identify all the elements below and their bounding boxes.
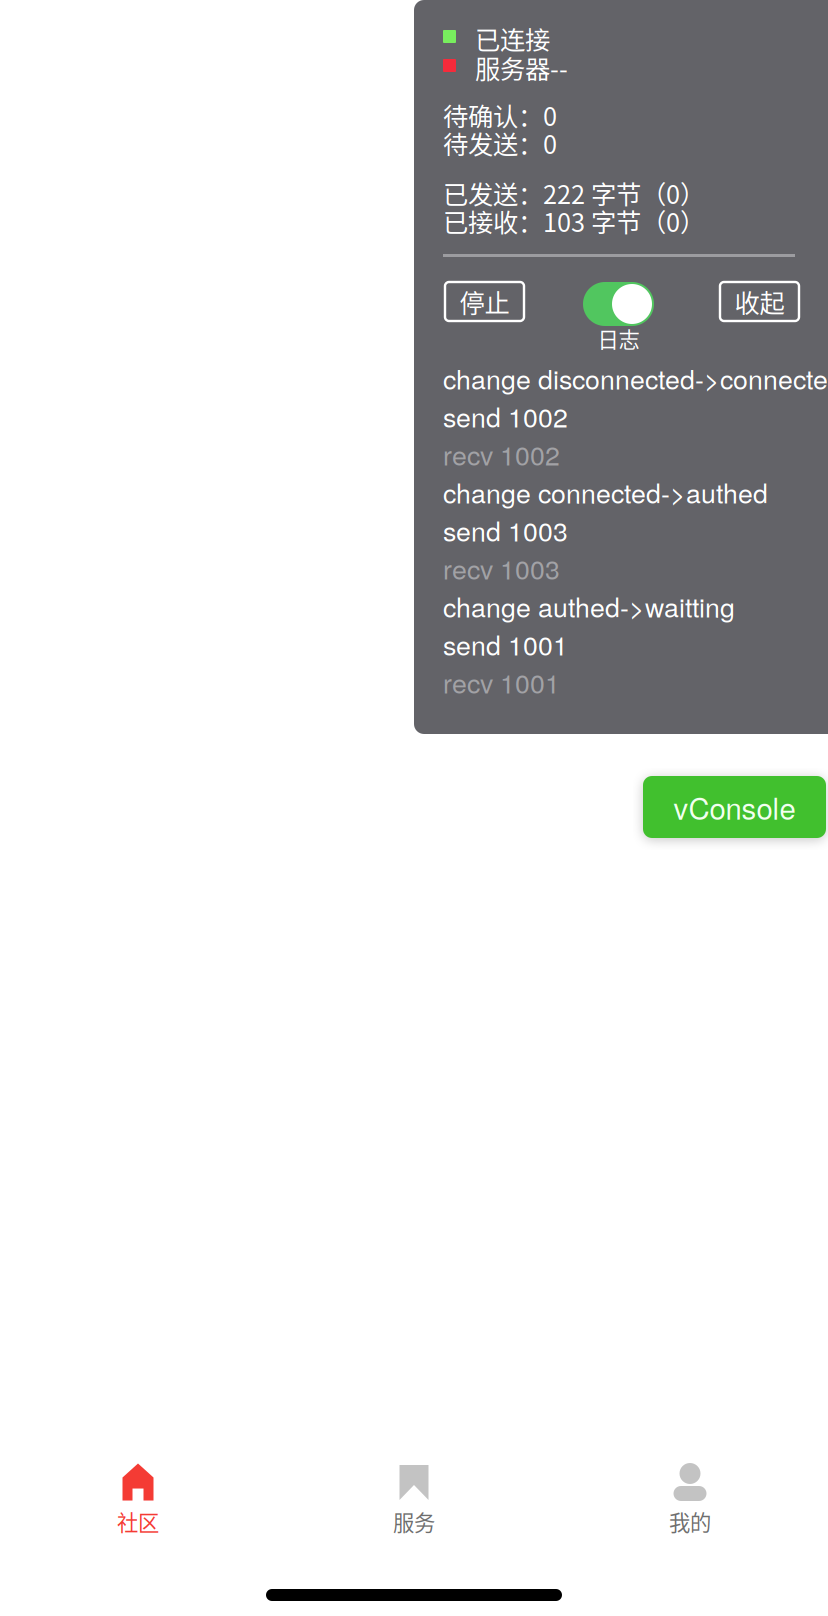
staticText: 收起: [734, 283, 784, 320]
staticText: change disconnected->connected: [443, 359, 828, 397]
staticText: 服务器--: [475, 49, 568, 86]
staticText: 待确认：0: [443, 97, 557, 133]
button[interactable]: vConsole: [643, 776, 826, 838]
staticText: 停止: [459, 283, 509, 320]
staticText: send 1001: [443, 625, 568, 663]
staticText: send 1003: [443, 511, 568, 549]
staticText: 待发送：0: [443, 125, 557, 161]
staticText: 服务: [393, 1506, 435, 1537]
button[interactable]: 服务: [276, 1463, 552, 1537]
staticText: 日志: [597, 323, 639, 354]
staticText: 已接收：103 字节（0）: [443, 203, 705, 239]
staticText: change connected->authed: [443, 473, 768, 511]
staticText: change authed->waitting: [443, 587, 735, 625]
staticText: 已连接: [475, 20, 550, 57]
staticText: 我的: [669, 1506, 711, 1537]
staticText: vConsole: [673, 786, 795, 828]
staticText: recv 1003: [443, 549, 560, 587]
staticText: 已发送：222 字节（0）: [443, 175, 705, 211]
staticText: 社区: [117, 1506, 159, 1537]
staticText: send 1002: [443, 397, 568, 435]
button[interactable]: 社区: [0, 1463, 276, 1537]
button[interactable]: 停止: [445, 282, 524, 321]
staticText: recv 1001: [443, 663, 560, 701]
button[interactable]: 我的: [552, 1463, 828, 1537]
button[interactable]: 收起: [720, 282, 799, 321]
staticText: recv 1002: [443, 435, 560, 473]
button[interactable]: 日志: [583, 282, 654, 354]
